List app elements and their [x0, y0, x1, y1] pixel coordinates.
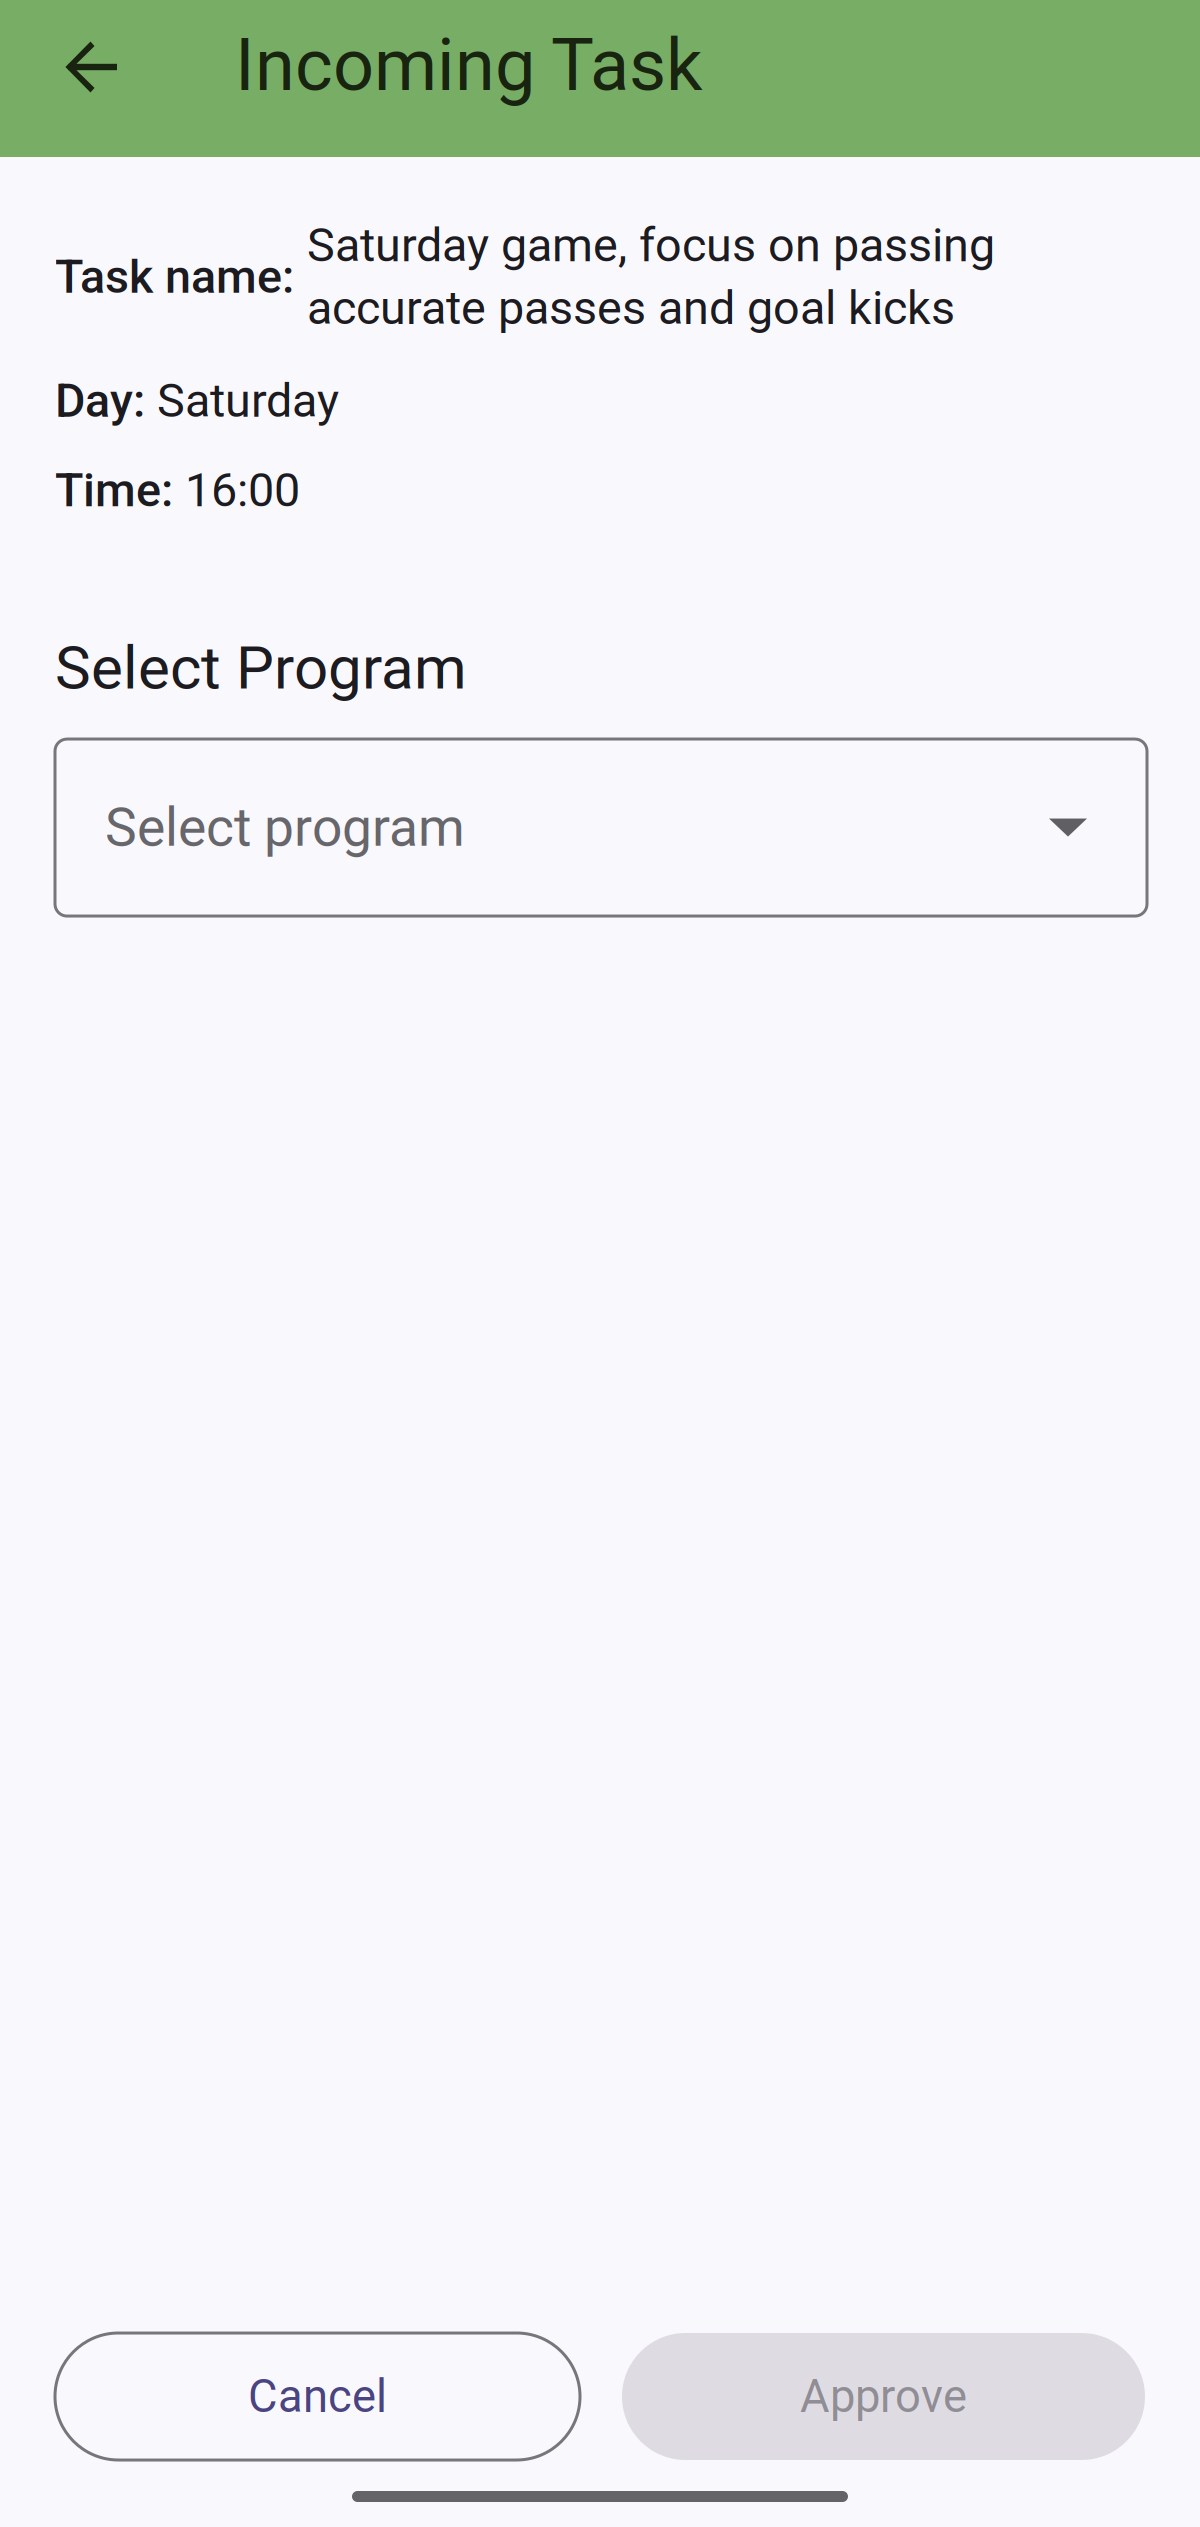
staticText: Saturday: [157, 373, 339, 428]
staticText: Saturday game, focus on passing accurate…: [307, 218, 995, 335]
button[interactable]: Back: [0, 0, 235, 157]
staticText: Time:: [55, 463, 185, 518]
staticText: Select Program: [55, 633, 467, 703]
staticText: 16:00: [185, 463, 300, 518]
staticText: Day:: [55, 373, 157, 428]
staticText: Select program: [105, 796, 465, 859]
staticText: Incoming Task: [235, 23, 702, 108]
button[interactable]: Cancel: [55, 2333, 580, 2460]
staticText: Task name:: [55, 249, 294, 304]
staticText: Approve: [800, 2370, 967, 2423]
button[interactable]: Approve: [622, 2333, 1145, 2460]
button[interactable]: Select program: [55, 739, 1147, 916]
staticText: Cancel: [248, 2370, 387, 2423]
